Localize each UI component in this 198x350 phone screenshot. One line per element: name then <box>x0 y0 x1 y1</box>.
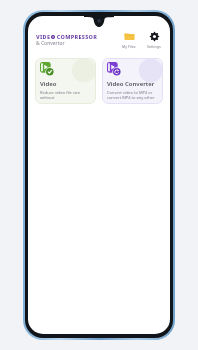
staticText: Video Converter <box>107 80 155 88</box>
button[interactable]: Video Compressor <box>35 58 96 104</box>
staticText: Convert video to MP4 or convert MP4 to a… <box>107 90 159 100</box>
staticText: COMPRESSOR <box>55 33 98 40</box>
button[interactable]: My Files <box>121 30 137 50</box>
button[interactable]: Video Converter <box>102 58 163 104</box>
staticText: Reduce video file size without lossless … <box>40 90 92 100</box>
staticText: VIDE <box>36 33 51 40</box>
staticText: & Convertor <box>36 40 65 47</box>
staticText: Settings <box>147 44 161 49</box>
staticText: My Files <box>122 44 136 49</box>
button[interactable]: Settings <box>146 30 162 50</box>
staticText: Video Compressor <box>40 80 92 88</box>
